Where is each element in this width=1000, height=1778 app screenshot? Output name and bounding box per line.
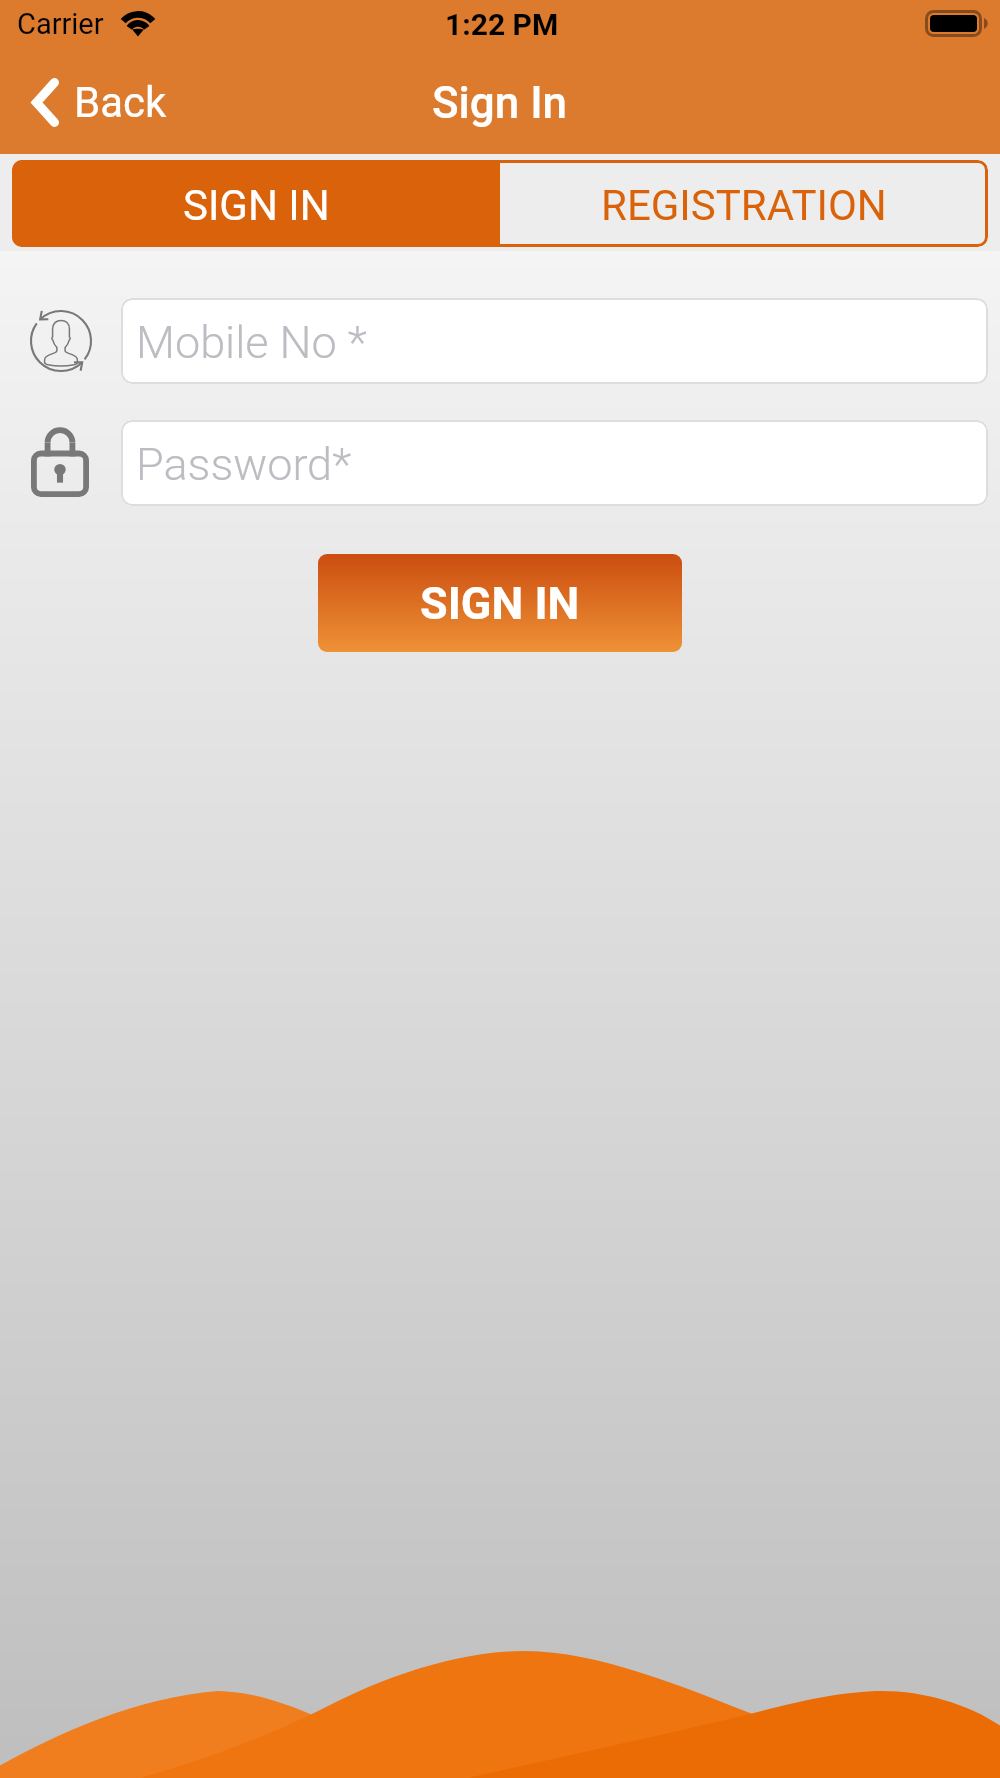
button[interactable]: Password* <box>121 420 988 506</box>
button[interactable]: Back <box>0 72 185 137</box>
staticText: SIGN IN <box>183 181 330 230</box>
staticText: Carrier <box>17 7 104 41</box>
staticText: Mobile No * <box>136 316 367 369</box>
button[interactable]: Mobile No * <box>121 298 988 384</box>
staticText: REGISTRATION <box>601 181 887 230</box>
button[interactable]: SIGN IN <box>12 160 500 247</box>
button[interactable]: REGISTRATION <box>500 160 988 247</box>
staticText: 1:22 PM <box>445 7 559 42</box>
staticText: Password* <box>136 438 352 491</box>
staticText: SIGN IN <box>420 577 580 630</box>
staticText: Sign In <box>432 77 568 129</box>
staticText: Back <box>74 78 167 127</box>
other: Password <box>31 429 89 497</box>
button[interactable]: SIGN IN <box>318 554 682 652</box>
other: Mobile number <box>29 309 93 373</box>
